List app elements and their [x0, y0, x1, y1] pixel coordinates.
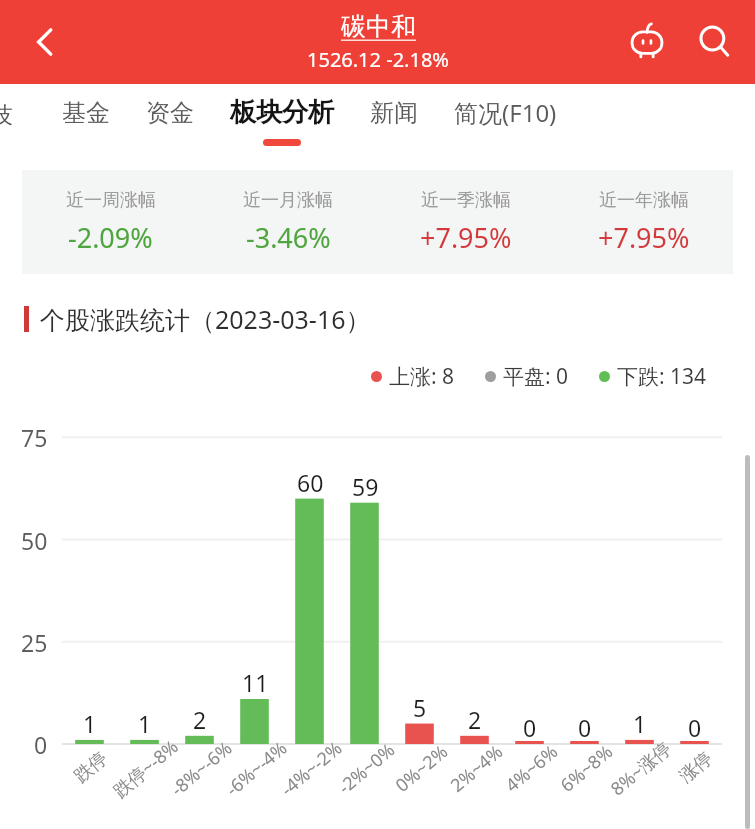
- staticText: 2: [193, 704, 207, 735]
- button[interactable]: 板块分析: [212, 84, 352, 158]
- button[interactable]: 近一季涨幅: [377, 170, 555, 274]
- staticText: -4%~-2%: [275, 735, 347, 802]
- staticText: 基金: [62, 98, 110, 128]
- staticText: 下跌: 134: [617, 362, 707, 391]
- staticText: 75: [21, 422, 48, 453]
- staticText: 1: [83, 708, 97, 739]
- staticText: 25: [21, 627, 48, 658]
- staticText: 50: [21, 525, 48, 556]
- staticText: 跌停: [70, 747, 112, 788]
- button[interactable]: 基金: [44, 84, 128, 158]
- staticText: 跌停~-8%: [108, 734, 184, 803]
- staticText: 碳中和: [341, 11, 416, 42]
- staticText: 近一年涨幅: [599, 189, 689, 212]
- button[interactable]: 上涨: 8: [371, 362, 455, 391]
- staticText: 近一周涨幅: [66, 189, 156, 212]
- staticText: 平盘: 0: [503, 362, 569, 391]
- button[interactable]: 简况(F10): [436, 84, 575, 158]
- staticText: +7.95%: [598, 219, 690, 256]
- staticText: 2%~4%: [445, 739, 508, 798]
- staticText: -6%~-4%: [220, 735, 292, 802]
- staticText: 60: [297, 467, 324, 498]
- staticText: -2%~0%: [333, 737, 400, 800]
- staticText: 上涨: 8: [389, 362, 455, 391]
- button[interactable]: AI assistant: [619, 14, 675, 70]
- staticText: 2: [468, 704, 482, 735]
- button[interactable]: Back: [16, 13, 74, 71]
- staticText: 板块分析: [230, 96, 334, 129]
- staticText: 涨停: [675, 747, 717, 788]
- staticText: 11: [242, 667, 269, 698]
- staticText: 新闻: [370, 98, 418, 128]
- button[interactable]: 近一年涨幅: [555, 170, 733, 274]
- staticText: 近一月涨幅: [243, 189, 333, 212]
- staticText: 0: [523, 712, 537, 743]
- staticText: 近一季涨幅: [421, 189, 511, 212]
- staticText: 0: [688, 712, 702, 743]
- button[interactable]: 近一月涨幅: [199, 170, 377, 274]
- staticText: -8%~-6%: [165, 735, 237, 802]
- button[interactable]: Search: [687, 14, 743, 70]
- staticText: 8%~涨停: [605, 736, 677, 801]
- staticText: 0%~2%: [390, 739, 453, 798]
- staticText: -2.09%: [68, 219, 153, 256]
- staticText: 59: [352, 471, 379, 502]
- staticText: 个股涨跌统计（2023-03-16）: [40, 302, 371, 336]
- staticText: 0: [578, 712, 592, 743]
- staticText: 资金: [146, 98, 194, 128]
- button[interactable]: 资金: [128, 84, 212, 158]
- button[interactable]: 平盘: 0: [485, 362, 569, 391]
- staticText: -3.46%: [246, 219, 331, 256]
- staticText: 0: [34, 729, 48, 760]
- button[interactable]: 下跌: 134: [599, 362, 707, 391]
- staticText: 1: [633, 708, 647, 739]
- staticText: +7.95%: [420, 219, 512, 256]
- button[interactable]: 新闻: [352, 84, 436, 158]
- button[interactable]: 近一周涨幅: [22, 170, 199, 274]
- staticText: 5: [413, 692, 427, 723]
- staticText: 1526.12 -2.18%: [307, 46, 449, 73]
- staticText: 1: [138, 708, 152, 739]
- button[interactable]: 技: [0, 101, 13, 130]
- staticText: 简况(F10): [454, 96, 557, 129]
- staticText: 6%~8%: [555, 739, 618, 798]
- staticText: 4%~6%: [500, 739, 563, 798]
